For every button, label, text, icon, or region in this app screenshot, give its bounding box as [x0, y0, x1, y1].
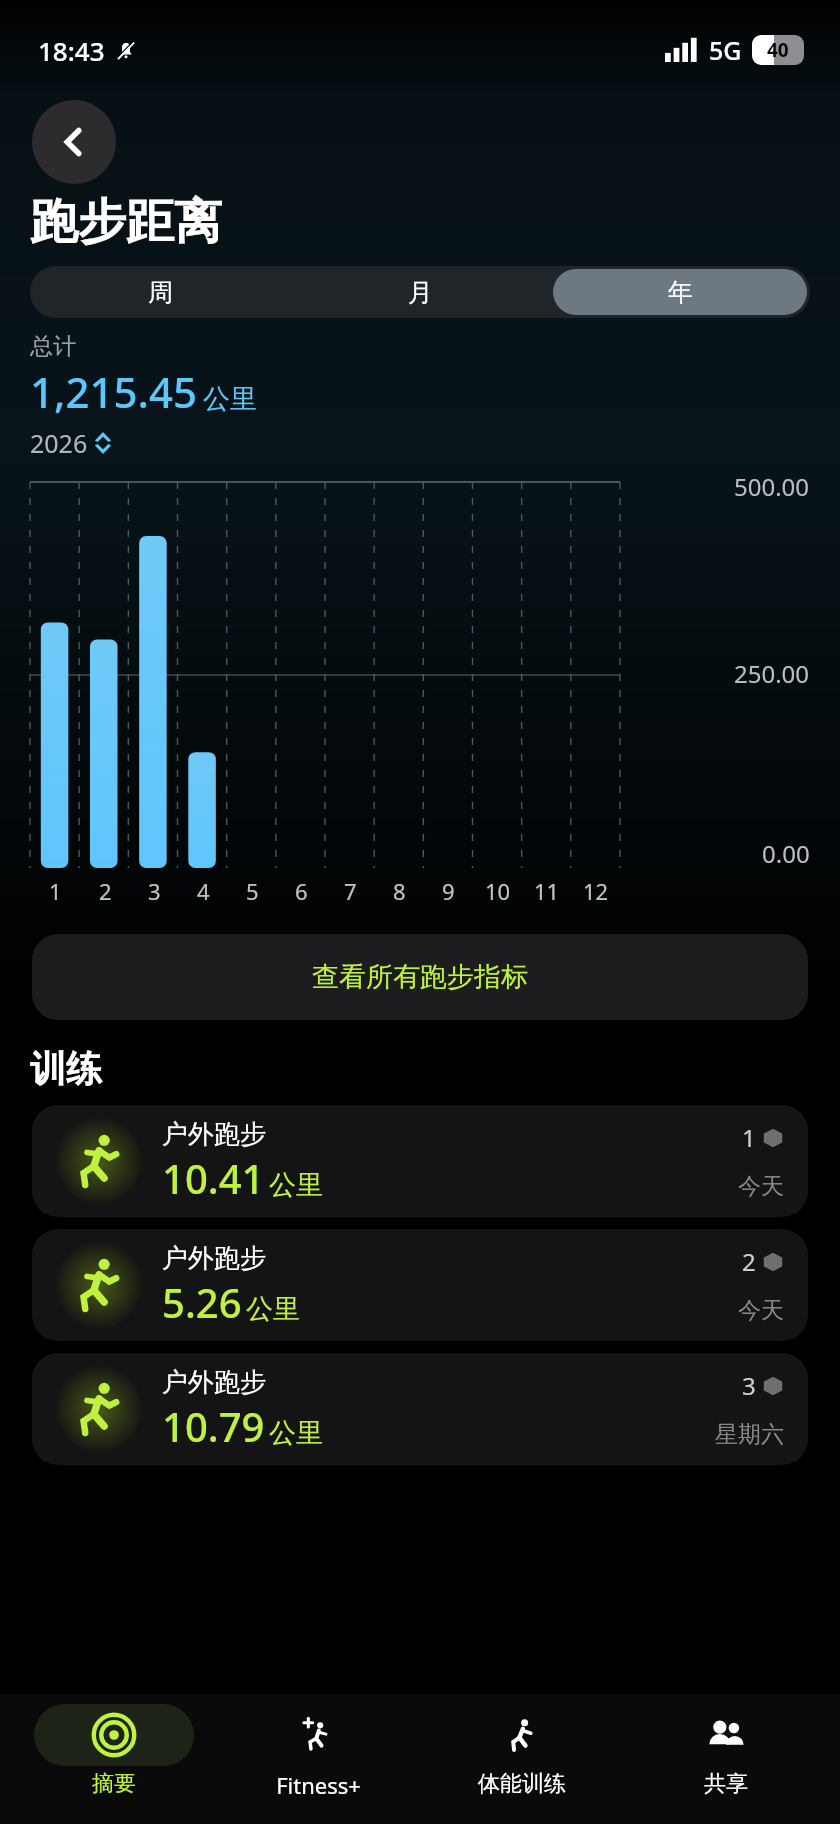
- staticText: 5G: [709, 33, 742, 67]
- button[interactable]: 返回: [32, 100, 116, 184]
- staticText: 8: [393, 876, 406, 906]
- staticText: 跑步距离: [30, 192, 222, 252]
- staticText: 公里: [246, 1292, 300, 1326]
- staticText: 体能训练: [478, 1770, 566, 1798]
- staticText: 总计: [30, 332, 76, 361]
- staticText: 2: [99, 876, 112, 906]
- staticText: 查看所有跑步指标: [312, 960, 528, 994]
- staticText: 10: [485, 876, 511, 906]
- staticText: 1,215.45: [30, 363, 198, 420]
- button[interactable]: 户外跑步: [32, 1353, 808, 1465]
- staticText: 1: [742, 1121, 756, 1154]
- button[interactable]: 户外跑步: [32, 1229, 808, 1341]
- staticText: 12: [583, 876, 609, 906]
- staticText: 6: [295, 876, 308, 906]
- staticText: Fitness+: [276, 1770, 361, 1800]
- staticText: 今天: [738, 1172, 784, 1201]
- button[interactable]: 体能训练: [432, 1704, 612, 1798]
- staticText: 4: [197, 876, 210, 906]
- staticText: 9: [442, 876, 455, 906]
- staticText: 月: [408, 277, 433, 308]
- staticText: 10.41: [162, 1151, 265, 1205]
- staticText: 5.26: [162, 1275, 242, 1329]
- staticText: 今天: [738, 1296, 784, 1325]
- staticText: 户外跑步: [162, 1242, 266, 1275]
- button[interactable]: Fitness+: [228, 1704, 408, 1800]
- staticText: 5: [246, 876, 259, 906]
- button[interactable]: 摘要: [24, 1704, 204, 1798]
- staticText: 500.00: [734, 470, 810, 503]
- staticText: 公里: [203, 382, 257, 416]
- button[interactable]: 共享: [636, 1704, 816, 1798]
- staticText: 250.00: [734, 657, 810, 690]
- staticText: 0.00: [762, 837, 810, 870]
- staticText: 10.79: [162, 1399, 265, 1453]
- staticText: 户外跑步: [162, 1366, 266, 1399]
- staticText: 3: [148, 876, 161, 906]
- staticText: 公里: [269, 1168, 323, 1202]
- staticText: 2: [742, 1245, 756, 1278]
- button[interactable]: 周: [33, 269, 287, 315]
- button[interactable]: 年: [553, 269, 807, 315]
- staticText: 2026: [30, 426, 88, 460]
- button[interactable]: 查看所有跑步指标: [32, 934, 808, 1020]
- staticText: 共享: [704, 1770, 748, 1798]
- staticText: 18:43: [38, 33, 105, 68]
- staticText: 摘要: [92, 1770, 136, 1798]
- staticText: 户外跑步: [162, 1118, 266, 1151]
- staticText: 年: [668, 277, 693, 308]
- staticText: 11: [534, 876, 560, 906]
- staticText: 1: [49, 876, 62, 906]
- staticText: 训练: [30, 1046, 102, 1091]
- button[interactable]: 户外跑步: [32, 1105, 808, 1217]
- staticText: 40: [767, 37, 789, 63]
- staticText: 星期六: [715, 1420, 784, 1449]
- button[interactable]: 月: [293, 269, 547, 315]
- staticText: 公里: [269, 1416, 323, 1450]
- staticText: 7: [344, 876, 357, 906]
- staticText: 3: [742, 1369, 756, 1402]
- button[interactable]: 2026: [30, 426, 112, 460]
- staticText: 周: [148, 277, 173, 308]
